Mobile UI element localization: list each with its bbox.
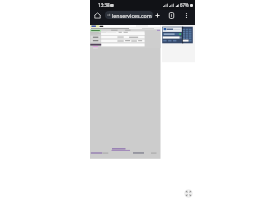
button[interactable]: Home	[94, 12, 101, 19]
staticText: 13:38	[98, 2, 110, 8]
button[interactable]: More options	[183, 12, 190, 19]
button[interactable]: lenservices.com	[105, 11, 153, 19]
staticText: 67%	[180, 2, 189, 8]
button[interactable]: Expand	[184, 189, 193, 198]
button[interactable]: Tabs	[168, 12, 175, 19]
button[interactable]: New tab	[154, 12, 161, 19]
staticText: lenservices.com	[112, 12, 152, 19]
